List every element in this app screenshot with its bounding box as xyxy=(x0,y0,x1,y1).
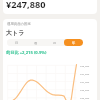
staticText: ¥247,880 xyxy=(6,0,46,11)
staticText: 年 xyxy=(72,41,76,45)
staticText: 246,000 xyxy=(80,96,90,99)
staticText: 運用資産の推移 xyxy=(7,22,31,26)
staticText: 日 xyxy=(15,41,19,45)
staticText: 大トラ xyxy=(6,29,25,37)
staticText: 248,000 xyxy=(80,64,90,67)
button[interactable]: 日 xyxy=(7,39,26,46)
staticText: 247,000 xyxy=(80,80,90,83)
staticText: 月 xyxy=(53,41,57,45)
staticText: 246,500 xyxy=(80,88,90,91)
button[interactable]: 年 xyxy=(64,39,83,46)
staticText: 247,500 xyxy=(80,72,90,75)
staticText: 前日比 +2,215 (0.9%) xyxy=(6,50,47,56)
button[interactable]: 週 xyxy=(26,39,45,46)
staticText: 週 xyxy=(34,41,38,45)
button[interactable]: 月 xyxy=(45,39,64,46)
button[interactable]: ¥247,880 xyxy=(3,0,97,14)
